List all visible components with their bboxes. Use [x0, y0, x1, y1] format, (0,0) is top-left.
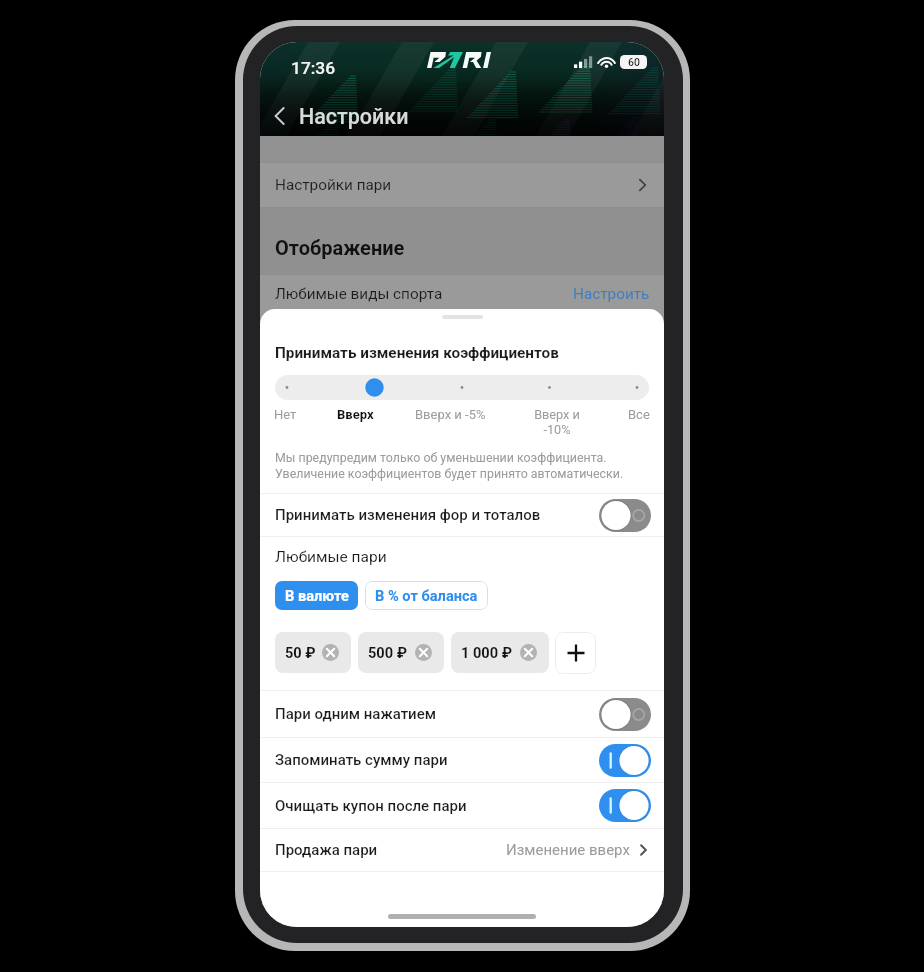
- staticText: Запоминать сумму пари: [275, 751, 448, 769]
- other: Off: [599, 698, 651, 731]
- staticText: 500 ₽: [368, 644, 408, 661]
- staticText: Продажа пари: [275, 841, 378, 859]
- staticText: Настроить: [573, 285, 650, 303]
- staticText: Настройки пари: [275, 176, 392, 194]
- button[interactable]: Запоминать сумму пари: [260, 738, 664, 782]
- staticText: Мы предупредим только об уменьшении коэф…: [275, 450, 607, 465]
- staticText: В валюте: [285, 587, 349, 604]
- staticText: Очищать купон после пари: [275, 797, 467, 815]
- staticText: Принимать изменения фор и тоталов: [275, 506, 541, 524]
- staticText: Вверх: [337, 407, 374, 422]
- staticText: Увеличение коэффициентов будет принято а…: [275, 466, 624, 481]
- staticText: 17:36: [291, 58, 336, 78]
- staticText: Все: [628, 407, 650, 422]
- button[interactable]: [275, 375, 649, 400]
- staticText: В % от баланса: [375, 587, 478, 604]
- button[interactable]: Back: [260, 96, 664, 136]
- button[interactable]: Add amount: [555, 632, 596, 674]
- staticText: Нет: [274, 407, 297, 422]
- button[interactable]: 1 000 ₽: [451, 632, 549, 673]
- button[interactable]: Настройки пари: [260, 163, 664, 207]
- staticText: 1 000 ₽: [461, 644, 513, 661]
- staticText: Изменение вверх: [506, 841, 630, 859]
- button[interactable]: Принимать изменения фор и тоталов: [260, 494, 664, 536]
- button[interactable]: Продажа пари: [260, 829, 664, 871]
- button[interactable]: Любимые виды спорта: [260, 272, 664, 316]
- button[interactable]: 500 ₽: [358, 632, 444, 673]
- staticText: 50 ₽: [285, 644, 316, 661]
- button[interactable]: Пари одним нажатием: [260, 691, 664, 737]
- staticText: 60: [628, 56, 640, 68]
- staticText: Вверх и -10%: [526, 407, 588, 437]
- staticText: Пари одним нажатием: [275, 705, 436, 723]
- other: On: [599, 744, 651, 777]
- staticText: Любимые пари: [275, 548, 387, 566]
- button[interactable]: В % от баланса: [365, 581, 488, 610]
- other: On: [599, 789, 651, 822]
- button[interactable]: В валюте: [275, 581, 358, 610]
- staticText: Принимать изменения коэффициентов: [275, 344, 559, 362]
- button[interactable]: 50 ₽: [275, 632, 351, 673]
- staticText: Отображение: [275, 236, 405, 259]
- other: Off: [599, 499, 651, 532]
- staticText: Любимые виды спорта: [275, 285, 443, 303]
- button[interactable]: Очищать купон после пари: [260, 783, 664, 828]
- other: Back: [270, 105, 292, 127]
- staticText: Настройки: [299, 104, 409, 129]
- staticText: Вверх и -5%: [415, 407, 486, 422]
